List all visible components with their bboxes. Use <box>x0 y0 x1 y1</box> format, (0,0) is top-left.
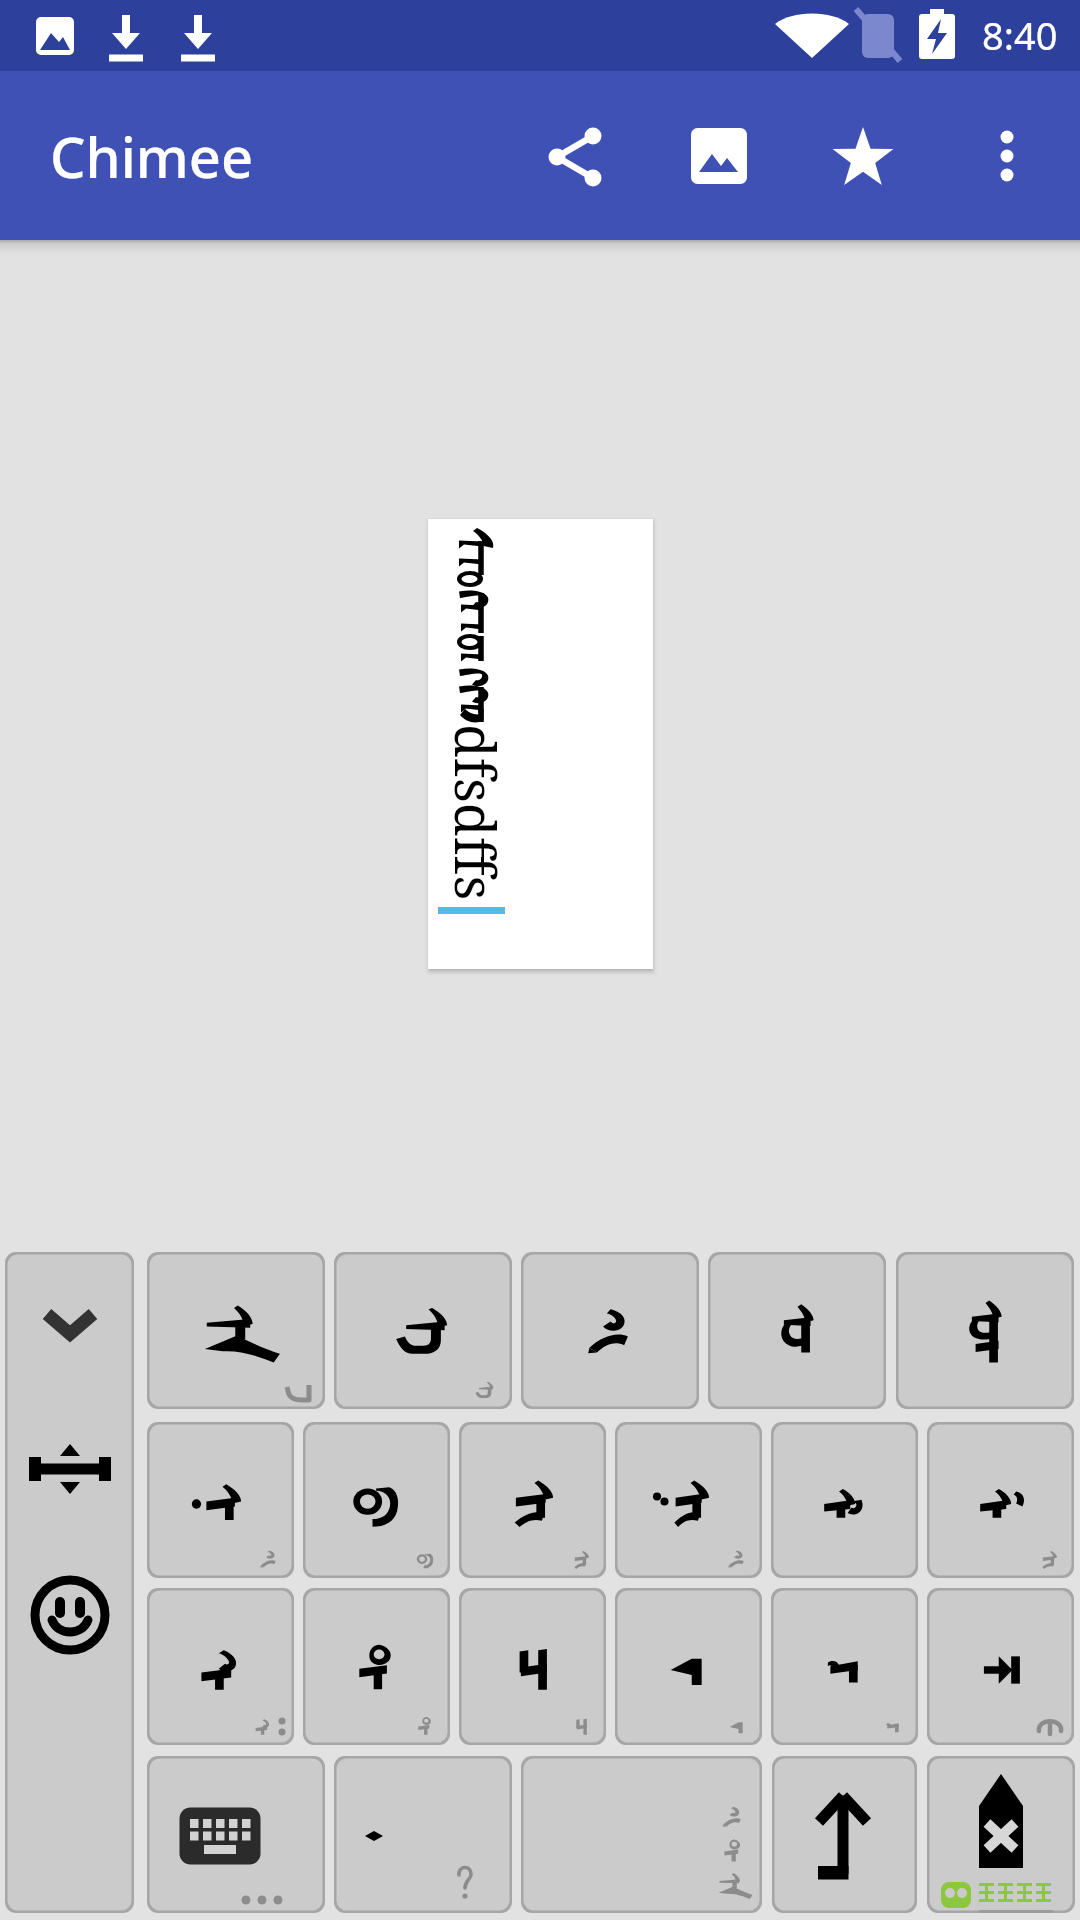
button[interactable]: Letter key <box>459 1588 606 1745</box>
button[interactable]: Letter key <box>303 1422 450 1578</box>
button[interactable]: Letter key <box>303 1588 450 1745</box>
button[interactable]: Punctuation <box>334 1756 512 1913</box>
button[interactable]: Share <box>503 84 647 228</box>
button[interactable]: Shift <box>772 1756 917 1913</box>
button[interactable]: More options <box>935 84 1079 228</box>
button[interactable]: dfsdffs <box>428 519 653 969</box>
button[interactable]: Letter key <box>708 1252 886 1409</box>
button[interactable]: Letter key <box>615 1588 762 1745</box>
button[interactable]: Letter key <box>147 1422 294 1578</box>
staticText: 8:40 <box>982 9 1058 61</box>
button[interactable]: Keyboard options <box>5 1252 134 1913</box>
button[interactable]: Letter key <box>334 1252 512 1409</box>
staticText: dfsdffs <box>439 724 514 901</box>
button[interactable]: Letter key <box>771 1422 918 1578</box>
button[interactable]: Letter key <box>896 1252 1074 1409</box>
button[interactable]: Letter key <box>771 1588 918 1745</box>
button[interactable]: Switch keyboard <box>147 1756 325 1913</box>
staticText: Chimee <box>50 118 254 194</box>
button[interactable]: Letter key <box>459 1422 606 1578</box>
button[interactable]: Letter key <box>927 1588 1074 1745</box>
button[interactable]: Letter key <box>521 1252 699 1409</box>
button[interactable]: Letter key <box>615 1422 762 1578</box>
button[interactable]: Letter key <box>927 1422 1074 1578</box>
button[interactable]: Space <box>521 1756 762 1913</box>
button[interactable]: Letter key <box>147 1588 294 1745</box>
button[interactable]: Backspace <box>927 1756 1075 1913</box>
button[interactable]: Favorite <box>791 84 935 228</box>
button[interactable]: Image <box>647 84 791 228</box>
button[interactable]: Letter key <box>147 1252 325 1409</box>
